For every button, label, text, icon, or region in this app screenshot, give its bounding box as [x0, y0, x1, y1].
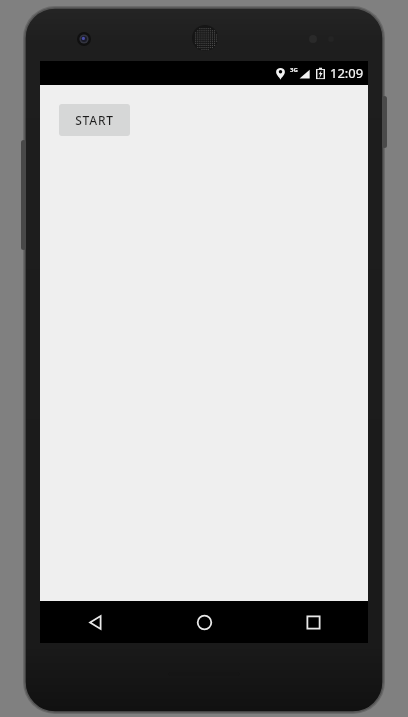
button[interactable]: Back [40, 601, 150, 643]
staticText: 12:09 [330, 64, 364, 82]
staticText: START [75, 112, 114, 128]
button[interactable]: START [59, 104, 130, 136]
staticText: 3G [290, 66, 298, 74]
button[interactable]: Recent apps [259, 601, 368, 643]
button[interactable]: Home [150, 601, 259, 643]
